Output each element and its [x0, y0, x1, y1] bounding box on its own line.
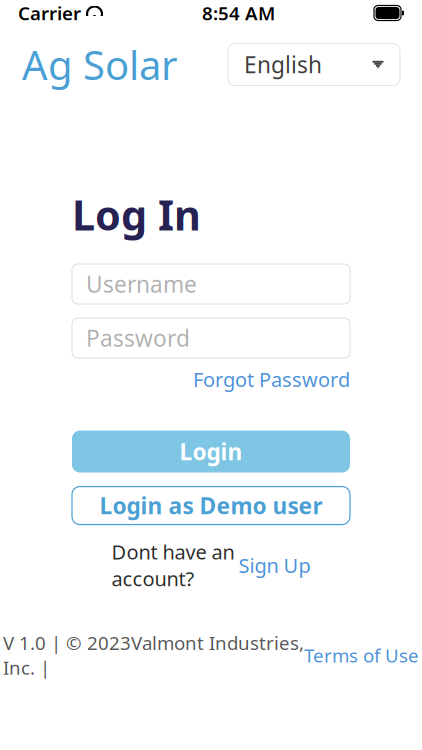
button[interactable]: Terms of Use: [304, 643, 419, 668]
staticText: Dont have an account?: [111, 539, 234, 592]
staticText: V 1.0 | © 2023Valmont Industries, Inc. |: [3, 630, 304, 680]
button[interactable]: Login: [72, 431, 350, 473]
button[interactable]: English: [228, 44, 400, 86]
staticText: Ag Solar: [22, 38, 178, 91]
staticText: Forgot Password: [193, 366, 350, 393]
staticText: 8:54 AM: [202, 1, 275, 25]
staticText: Carrier: [18, 1, 81, 25]
staticText: Password: [86, 323, 190, 353]
button[interactable]: Login as Demo user: [72, 487, 350, 525]
staticText: Username: [86, 269, 197, 299]
staticText: Log In: [72, 187, 201, 242]
staticText: Sign Up: [238, 552, 310, 578]
button[interactable]: Forgot Password: [193, 366, 350, 393]
staticText: English: [244, 49, 322, 80]
staticText: Login: [179, 436, 242, 467]
staticText: Terms of Use: [304, 643, 419, 668]
button[interactable]: Sign Up: [238, 552, 310, 578]
staticText: Login as Demo user: [99, 490, 322, 521]
